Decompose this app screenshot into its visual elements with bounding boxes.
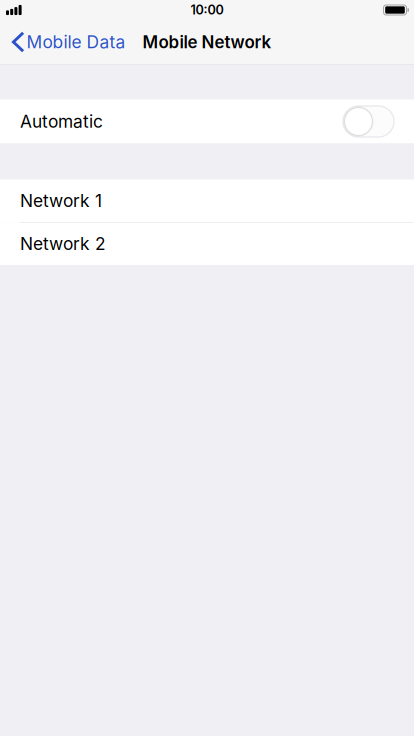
button[interactable]: Network 1 bbox=[0, 179, 414, 222]
staticText: Mobile Data bbox=[26, 31, 125, 52]
staticText: Network 1 bbox=[20, 190, 102, 211]
button[interactable]: Mobile Data bbox=[0, 22, 133, 62]
button[interactable]: Network 2 bbox=[0, 222, 414, 265]
button[interactable]: Automatic bbox=[0, 99, 414, 143]
staticText: Automatic bbox=[20, 111, 103, 132]
staticText: 10:00 bbox=[190, 2, 223, 18]
staticText: Mobile Network bbox=[142, 32, 271, 52]
staticText: Network 2 bbox=[20, 233, 106, 254]
